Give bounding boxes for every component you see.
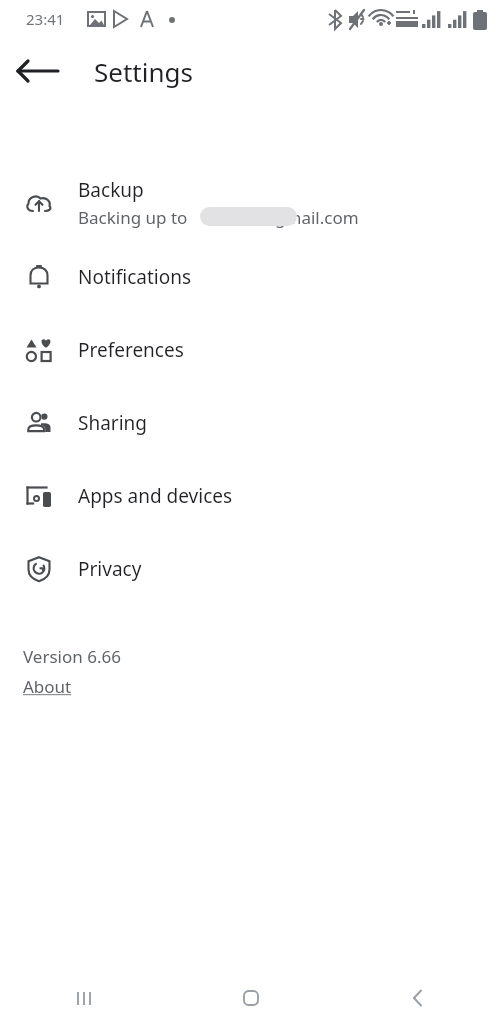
staticText: 23:41 <box>26 9 65 29</box>
button[interactable]: Sharing <box>0 386 501 459</box>
staticText: Settings <box>94 54 193 89</box>
button[interactable]: Privacy <box>0 532 501 605</box>
staticText: Version 6.66 <box>23 645 121 668</box>
staticText: Sharing <box>78 410 148 436</box>
staticText: Preferences <box>78 337 184 363</box>
button[interactable]: Backup <box>0 166 501 240</box>
button[interactable]: Apps and devices <box>0 459 501 532</box>
staticText: Privacy <box>78 556 142 582</box>
button[interactable]: Recents <box>0 966 167 1030</box>
staticText: Backing up to @gmail.com <box>78 206 359 229</box>
button[interactable]: Preferences <box>0 313 501 386</box>
staticText: Backup <box>78 177 144 203</box>
staticText: About <box>23 675 72 698</box>
button[interactable]: Back <box>14 47 62 95</box>
staticText: Apps and devices <box>78 483 233 509</box>
staticText: Notifications <box>78 264 192 290</box>
button[interactable]: Back <box>334 966 501 1030</box>
button[interactable]: Home <box>167 966 334 1030</box>
button[interactable]: About <box>23 675 72 698</box>
button[interactable]: Notifications <box>0 240 501 313</box>
